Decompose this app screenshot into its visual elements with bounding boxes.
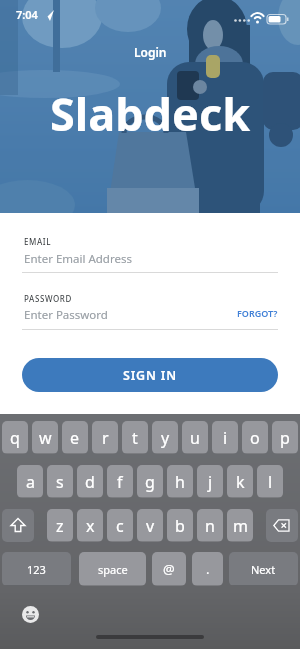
- button[interactable]: a: [17, 465, 43, 498]
- staticText: Next: [251, 562, 276, 577]
- button[interactable]: b: [167, 509, 193, 542]
- staticText: Login: [134, 44, 167, 60]
- button[interactable]: t: [122, 421, 148, 454]
- button[interactable]: s: [47, 465, 73, 498]
- button[interactable]: p: [272, 421, 298, 454]
- button[interactable]: space: [79, 552, 146, 586]
- staticText: q: [10, 427, 20, 449]
- staticText: PASSWORD: [24, 293, 72, 304]
- button[interactable]: [2, 509, 34, 542]
- staticText: s: [56, 471, 64, 493]
- button[interactable]: k: [227, 465, 253, 498]
- staticText: b: [175, 515, 185, 537]
- staticText: Slabdeck: [50, 83, 251, 144]
- button[interactable]: h: [167, 465, 193, 498]
- staticText: h: [175, 471, 185, 493]
- button[interactable]: i: [212, 421, 238, 454]
- staticText: f: [117, 471, 123, 493]
- staticText: EMAIL: [24, 236, 52, 247]
- button[interactable]: j: [197, 465, 223, 498]
- staticText: p: [280, 427, 290, 449]
- staticText: i: [223, 427, 228, 449]
- button[interactable]: n: [197, 509, 223, 542]
- button[interactable]: d: [77, 465, 103, 498]
- button[interactable]: @: [152, 552, 186, 586]
- button[interactable]: Enter Password: [22, 304, 278, 329]
- button[interactable]: r: [92, 421, 118, 454]
- button[interactable]: u: [182, 421, 208, 454]
- button[interactable]: x: [77, 509, 103, 542]
- staticText: a: [26, 471, 35, 493]
- button[interactable]: q: [2, 421, 28, 454]
- staticText: n: [205, 515, 215, 537]
- button[interactable]: w: [32, 421, 58, 454]
- button[interactable]: z: [47, 509, 73, 542]
- staticText: e: [70, 427, 80, 449]
- staticText: Enter Email Address: [24, 251, 132, 267]
- button[interactable]: l: [257, 465, 283, 498]
- staticText: c: [116, 515, 124, 537]
- button[interactable]: v: [137, 509, 163, 542]
- button[interactable]: FORGOT?: [237, 307, 278, 319]
- button[interactable]: o: [242, 421, 268, 454]
- staticText: w: [39, 427, 52, 449]
- staticText: x: [86, 515, 95, 537]
- staticText: g: [145, 471, 155, 493]
- button[interactable]: y: [152, 421, 178, 454]
- button[interactable]: Next: [229, 552, 298, 586]
- button[interactable]: m: [227, 509, 253, 542]
- staticText: SIGN IN: [123, 367, 177, 384]
- staticText: 7:04: [16, 7, 38, 22]
- staticText: @: [163, 560, 175, 578]
- staticText: d: [85, 471, 95, 493]
- staticText: j: [208, 471, 213, 493]
- staticText: l: [268, 471, 273, 493]
- button[interactable]: g: [137, 465, 163, 498]
- staticText: v: [146, 515, 155, 537]
- staticText: k: [236, 471, 245, 493]
- button[interactable]: 123: [2, 552, 71, 586]
- staticText: u: [190, 427, 200, 449]
- staticText: y: [161, 427, 170, 449]
- button[interactable]: Enter Email Address: [22, 248, 278, 272]
- staticText: m: [233, 515, 248, 537]
- staticText: o: [250, 427, 260, 449]
- button[interactable]: SIGN IN: [22, 358, 278, 392]
- button[interactable]: .: [192, 552, 223, 586]
- button[interactable]: f: [107, 465, 133, 498]
- staticText: z: [56, 515, 64, 537]
- staticText: space: [98, 562, 128, 577]
- button[interactable]: [266, 509, 298, 542]
- staticText: Enter Password: [24, 307, 108, 323]
- staticText: r: [102, 427, 109, 449]
- button[interactable]: [22, 606, 39, 623]
- staticText: .: [206, 560, 210, 578]
- button[interactable]: c: [107, 509, 133, 542]
- staticText: t: [132, 427, 138, 449]
- staticText: 123: [27, 562, 46, 577]
- button[interactable]: e: [62, 421, 88, 454]
